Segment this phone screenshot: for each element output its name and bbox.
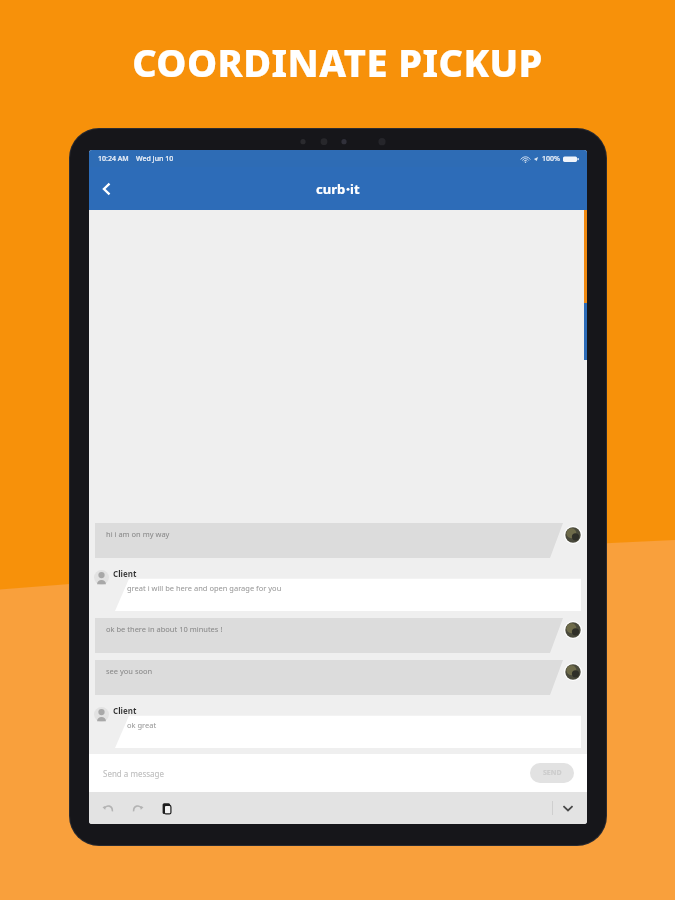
staticText: Client (113, 568, 137, 579)
button[interactable]: Client (89, 702, 587, 748)
button[interactable]: Paste (155, 797, 177, 819)
staticText: hi i am on my way (106, 529, 170, 539)
button[interactable]: ok be there in about 10 minutes ! (89, 618, 587, 653)
staticText: ok great (127, 720, 157, 730)
staticText: COORDINATE PICKUP (132, 36, 543, 88)
staticText: 100% (542, 154, 560, 164)
button[interactable]: Client (89, 565, 587, 611)
staticText: Wed Jun 10 (136, 154, 174, 164)
button[interactable]: SEND (530, 763, 574, 783)
button[interactable]: Undo (97, 797, 119, 819)
staticText: Client (113, 705, 137, 716)
staticText: curb (316, 180, 346, 198)
button[interactable]: Redo (126, 797, 148, 819)
staticText: 10:24 AM (98, 154, 129, 164)
staticText: ok be there in about 10 minutes ! (106, 624, 223, 634)
staticText: Send a message (103, 768, 164, 779)
staticText: it (350, 180, 360, 198)
button[interactable]: see you soon (89, 660, 587, 695)
button[interactable]: Collapse keyboard (555, 795, 581, 821)
staticText: SEND (543, 768, 562, 778)
button[interactable]: Back (89, 171, 125, 207)
button[interactable]: hi i am on my way (89, 523, 587, 558)
staticText: great i will be here and open garage for… (127, 583, 282, 593)
staticText: see you soon (106, 666, 153, 676)
